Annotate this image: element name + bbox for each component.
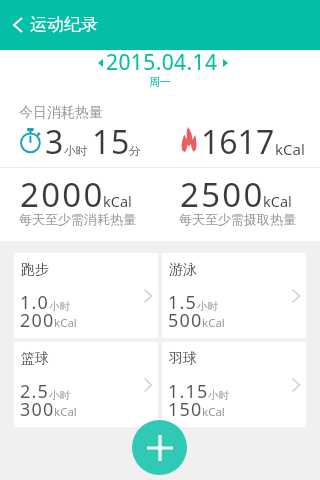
staticText: 1617 [201, 120, 275, 164]
staticText: 分 [129, 144, 141, 158]
staticText: 小时 [208, 389, 229, 402]
staticText: 500 [168, 308, 203, 333]
staticText: kCal [54, 404, 77, 420]
staticText: 2000 [20, 172, 105, 217]
other: Back [13, 17, 23, 33]
button[interactable]: 跑步 [14, 253, 158, 338]
staticText: 游泳 [169, 261, 197, 279]
staticText: 篮球 [21, 350, 49, 368]
staticText: 羽球 [169, 350, 197, 368]
staticText: 每天至少需摄取热量 [179, 211, 296, 227]
staticText: 今日消耗热量 [19, 104, 103, 122]
staticText: 2500 [180, 172, 265, 217]
staticText: 300 [20, 397, 55, 422]
staticText: 1.15 [168, 379, 209, 404]
staticText: 小时 [64, 144, 87, 158]
button[interactable]: Add record [132, 420, 187, 475]
staticText: 每天至少需消耗热量 [19, 211, 136, 227]
staticText: 2015.04.14 [106, 48, 218, 77]
button[interactable]: 篮球 [14, 342, 158, 427]
staticText: 2.5 [20, 379, 50, 404]
staticText: 200 [20, 308, 55, 333]
staticText: kCal [202, 404, 225, 420]
button[interactable]: 羽球 [162, 342, 306, 427]
staticText: kCal [263, 191, 292, 211]
button[interactable]: 游泳 [162, 253, 306, 338]
staticText: 小时 [197, 300, 218, 313]
staticText: 15 [92, 120, 130, 164]
staticText: 150 [168, 397, 203, 422]
staticText: 1.5 [168, 290, 198, 315]
staticText: kCal [202, 315, 225, 331]
staticText: 小时 [49, 300, 70, 313]
staticText: kCal [275, 139, 305, 159]
staticText: 运动纪录 [30, 14, 98, 35]
staticText: 小时 [49, 389, 70, 402]
staticText: kCal [103, 191, 132, 211]
button[interactable]: Back [0, 0, 320, 50]
staticText: 3 [45, 120, 65, 164]
staticText: 1.0 [20, 290, 50, 315]
staticText: 跑步 [21, 261, 49, 279]
staticText: kCal [54, 315, 77, 331]
staticText: 周一 [0, 75, 320, 89]
